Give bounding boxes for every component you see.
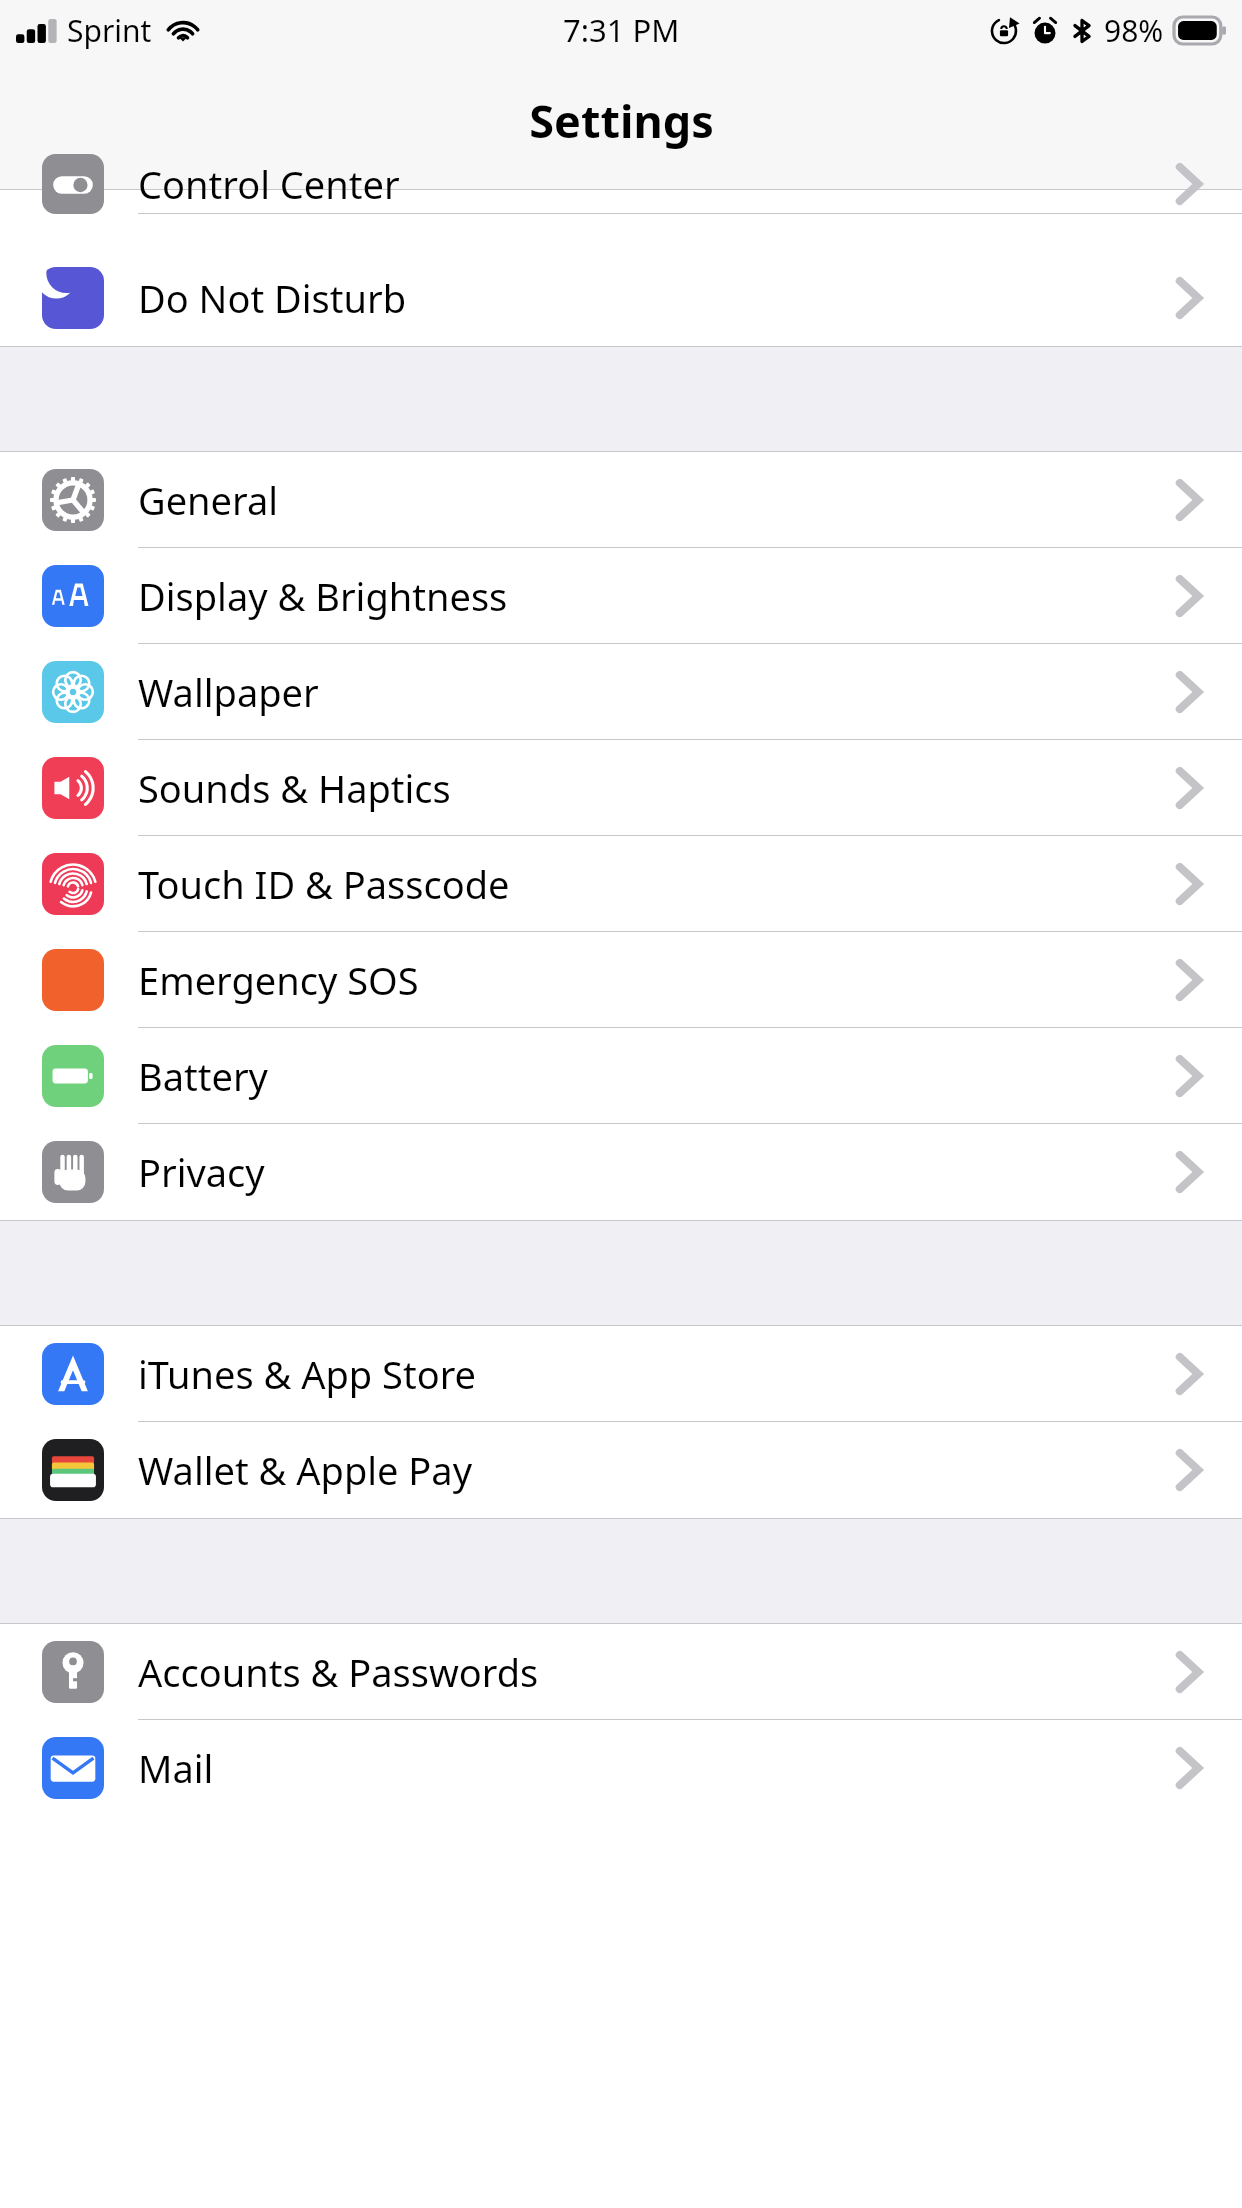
button[interactable]: Mail: [0, 1720, 1242, 1816]
button[interactable]: Do Not Disturb: [0, 250, 1242, 346]
staticText: Wallet & Apple Pay: [138, 1444, 473, 1496]
staticText: Sprint: [67, 10, 152, 51]
staticText: 98%: [1104, 10, 1164, 51]
button[interactable]: Touch ID & Passcode: [0, 836, 1242, 932]
staticText: Privacy: [138, 1146, 265, 1198]
staticText: 7:31 PM: [563, 9, 680, 51]
button[interactable]: iTunes & App Store: [0, 1326, 1242, 1422]
button[interactable]: Privacy: [0, 1124, 1242, 1220]
staticText: Do Not Disturb: [138, 272, 407, 324]
button[interactable]: Accounts & Passwords: [0, 1624, 1242, 1720]
staticText: Battery: [138, 1050, 268, 1102]
staticText: Sounds & Haptics: [138, 762, 451, 814]
other: Open Do Not Disturb: [1178, 279, 1200, 317]
other: Open Sounds & Haptics: [1178, 769, 1200, 807]
button[interactable]: Wallet & Apple Pay: [0, 1422, 1242, 1518]
other: Open Wallet & Apple Pay: [1178, 1451, 1200, 1489]
staticText: Touch ID & Passcode: [138, 858, 510, 910]
button[interactable]: Sounds & Haptics: [0, 740, 1242, 836]
other: Open General: [1178, 481, 1200, 519]
button[interactable]: Wallpaper: [0, 644, 1242, 740]
other: Open Accounts & Passwords: [1178, 1653, 1200, 1691]
other: Open Control Center: [1178, 165, 1200, 203]
other: Open Display & Brightness: [1178, 577, 1200, 615]
staticText: Accounts & Passwords: [138, 1646, 539, 1698]
staticText: General: [138, 474, 279, 526]
staticText: Settings: [529, 90, 714, 151]
other: Open iTunes & App Store: [1178, 1355, 1200, 1393]
staticText: Control Center: [138, 158, 400, 210]
button[interactable]: General: [0, 452, 1242, 548]
staticText: Display & Brightness: [138, 570, 508, 622]
other: Open Emergency SOS: [1178, 961, 1200, 999]
other: Open Touch ID & Passcode: [1178, 865, 1200, 903]
other: Open Wallpaper: [1178, 673, 1200, 711]
button[interactable]: Control Center: [0, 190, 1242, 250]
staticText: Wallpaper: [138, 666, 319, 718]
button[interactable]: Battery: [0, 1028, 1242, 1124]
staticText: Emergency SOS: [138, 954, 419, 1006]
button[interactable]: Emergency SOS: [0, 932, 1242, 1028]
button[interactable]: Display & Brightness: [0, 548, 1242, 644]
staticText: Mail: [138, 1742, 214, 1794]
other: Open Privacy: [1178, 1153, 1200, 1191]
other: Open Battery: [1178, 1057, 1200, 1095]
staticText: iTunes & App Store: [138, 1348, 477, 1400]
other: Open Mail: [1178, 1749, 1200, 1787]
